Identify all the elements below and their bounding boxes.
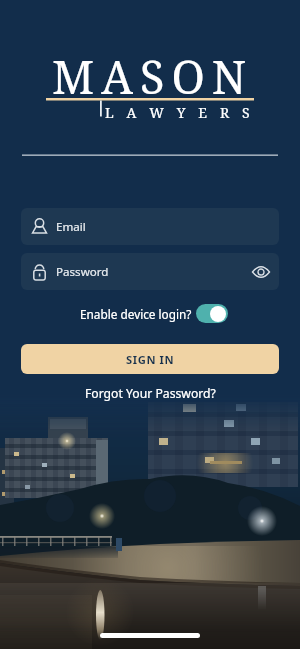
button[interactable]: Email (21, 208, 279, 245)
button[interactable] (196, 304, 228, 323)
button[interactable]: Forgot Your Password? (85, 385, 216, 402)
staticText: L A W Y E R S (105, 103, 255, 122)
staticText: Email (56, 219, 86, 235)
button[interactable]: Password (21, 253, 279, 290)
staticText: MASON (52, 46, 254, 107)
staticText: SIGN IN (126, 352, 175, 367)
button[interactable]: SIGN IN (21, 344, 279, 374)
staticText: Enable device login? (80, 306, 192, 322)
staticText: Password (56, 264, 109, 280)
